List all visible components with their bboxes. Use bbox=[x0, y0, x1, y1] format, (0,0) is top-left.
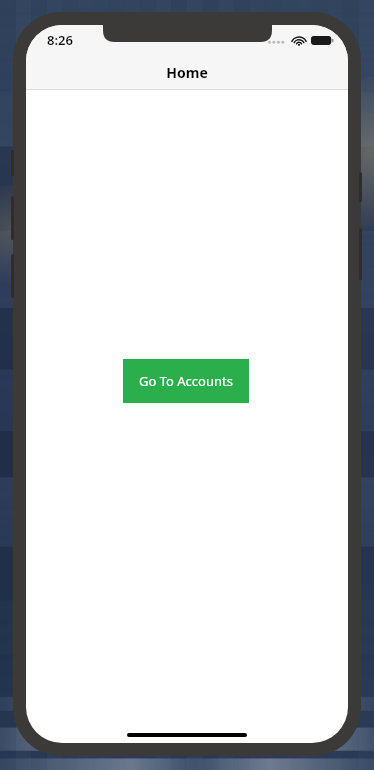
staticText: Go To Accounts bbox=[139, 372, 233, 390]
staticText: Home bbox=[166, 63, 208, 82]
staticText: 8:26 bbox=[47, 31, 73, 49]
other: Home indicator bbox=[127, 733, 247, 737]
button[interactable]: Go To Accounts bbox=[123, 359, 249, 403]
